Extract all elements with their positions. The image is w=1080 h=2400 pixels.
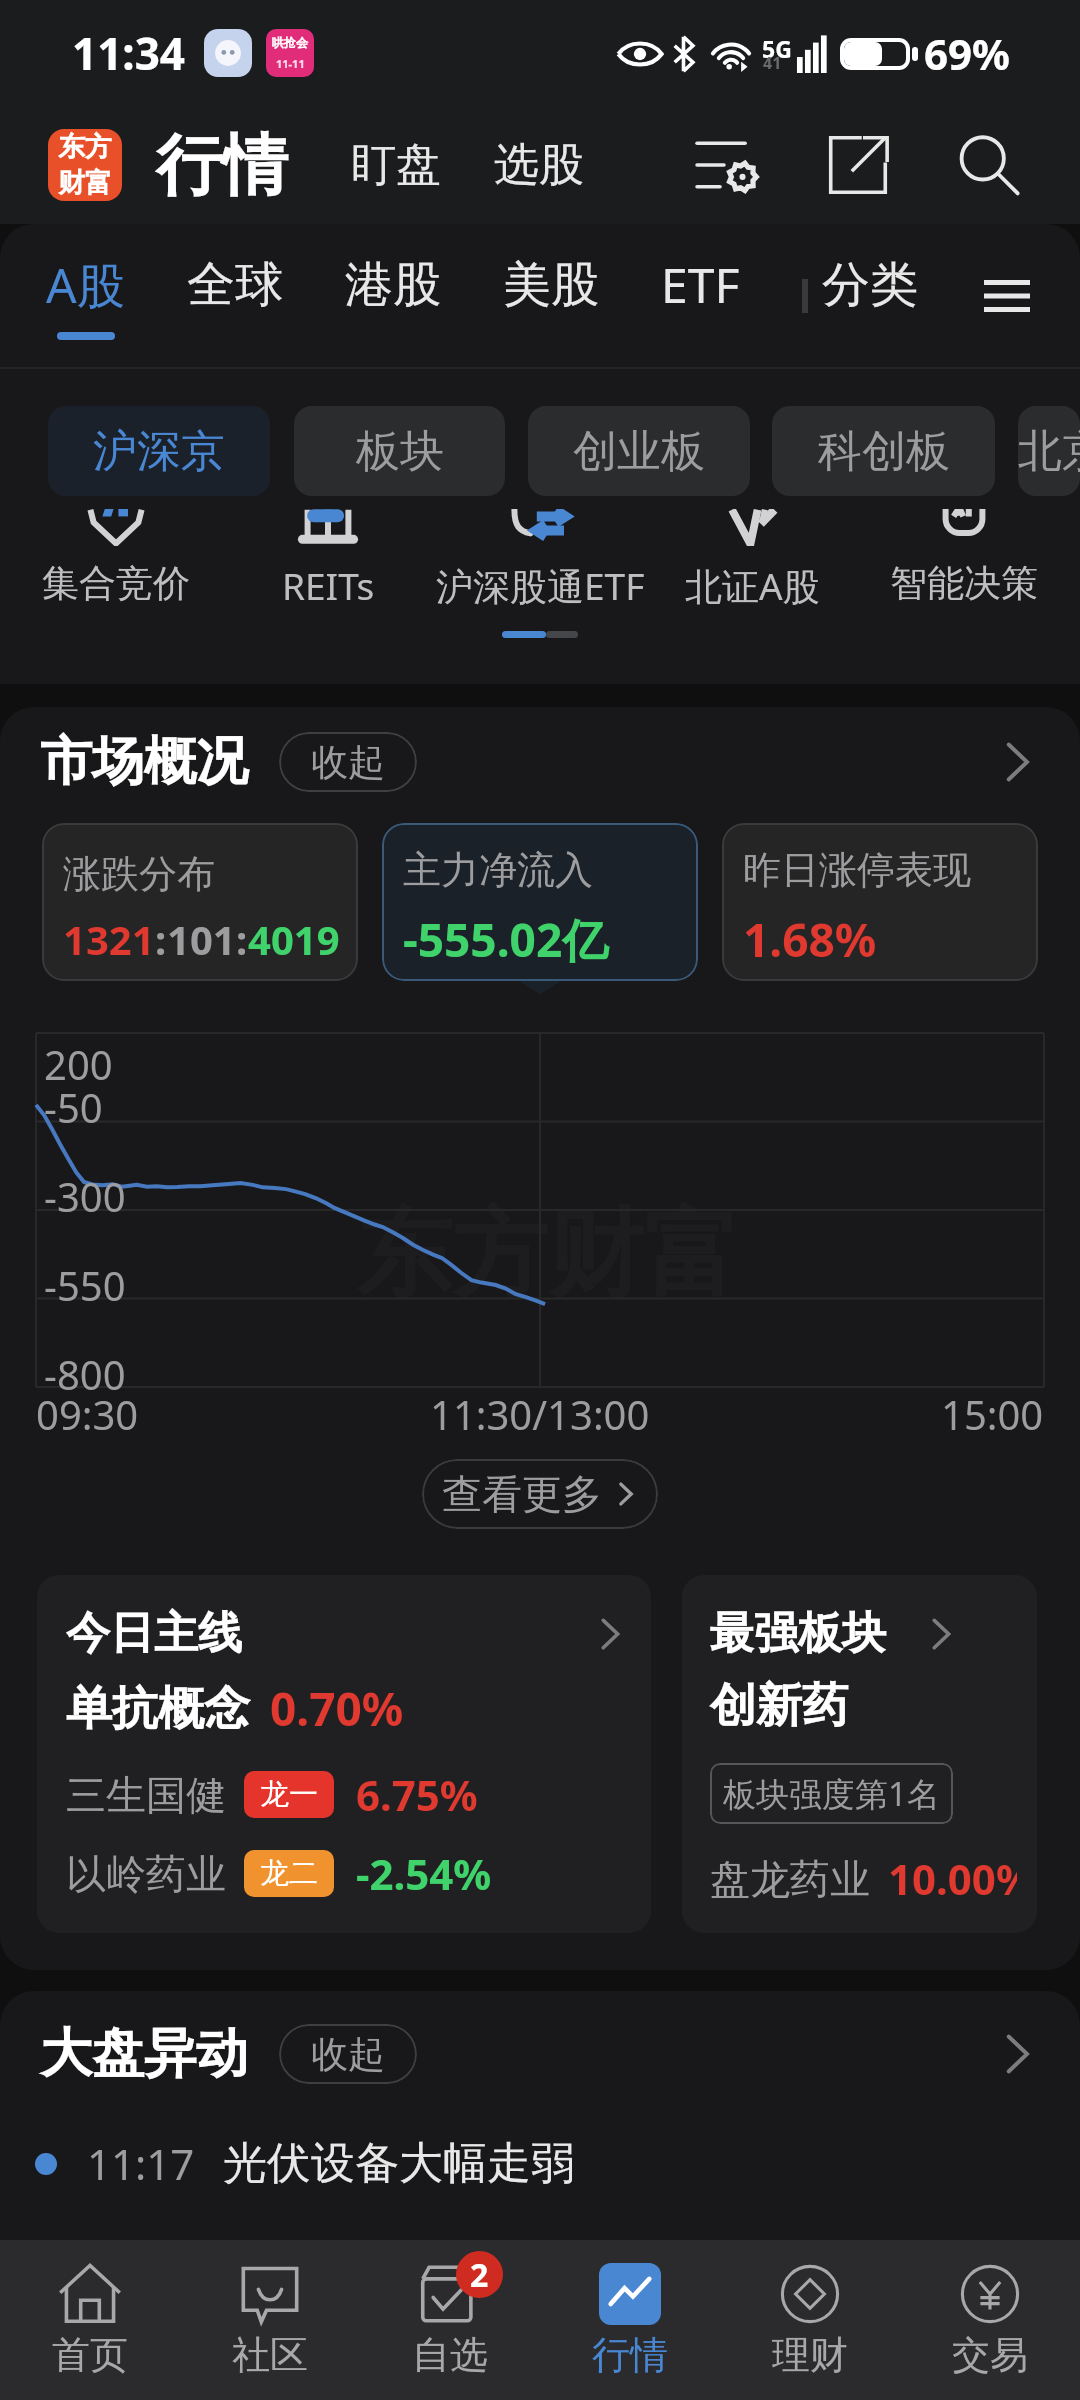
button[interactable]: 北京 (1018, 406, 1080, 496)
staticText: 科创板 (818, 424, 950, 479)
staticText: 东方财富 (356, 1195, 740, 1316)
staticText: 以岭药业 (66, 1849, 226, 1899)
staticText: 智能决策 (890, 560, 1038, 607)
staticText: -50 (44, 1080, 103, 1134)
staticText: 分类 (822, 255, 918, 315)
button[interactable]: 昨日涨停表现 (722, 823, 1038, 981)
button[interactable]: 理财 (720, 2240, 900, 2400)
staticText: 收起 (311, 739, 385, 786)
staticText: 盘龙药业 (710, 1854, 870, 1904)
button[interactable]: 2 (360, 2240, 540, 2400)
button[interactable]: 沪深股通ETF (434, 509, 646, 611)
staticText: 沪深股通ETF (436, 560, 645, 611)
button[interactable]: 盯盘 (351, 137, 441, 194)
staticText: 北证A股 (685, 560, 820, 611)
staticText: 社区 (232, 2331, 308, 2379)
staticText: : (236, 912, 248, 966)
staticText: 北京 (1018, 424, 1080, 479)
staticText: 1.68% (743, 908, 877, 971)
button[interactable]: 最强板块 (682, 1575, 1037, 1933)
button[interactable]: 社区 (180, 2240, 360, 2400)
staticText: 09:30 (36, 1387, 139, 1441)
staticText: 昨日涨停表现 (743, 846, 971, 894)
button[interactable]: 北证A股 (646, 509, 858, 611)
staticText: 15:00 (941, 1387, 1044, 1441)
staticText: 1321 (63, 912, 155, 966)
staticText: 2 (470, 2253, 489, 2297)
button[interactable]: 交易 (900, 2240, 1080, 2400)
button[interactable]: 全球 (187, 255, 283, 337)
staticText: 东方 (58, 130, 112, 164)
button[interactable]: Search (950, 127, 1026, 203)
button[interactable]: 收起 (279, 732, 417, 792)
staticText: 收起 (311, 2031, 385, 2078)
staticText: 行情 (592, 2331, 668, 2379)
staticText: 查看更多 (442, 1469, 602, 1519)
button[interactable]: 分类 (822, 255, 918, 337)
staticText: 市场概况 (40, 729, 248, 795)
button[interactable]: 涨跌分布 (42, 823, 358, 981)
staticText: 创业板 (573, 424, 705, 479)
button[interactable]: 板块 (294, 406, 505, 496)
staticText: 美股 (503, 255, 599, 315)
staticText: 最强板块 (710, 1606, 886, 1661)
staticText: 6.75% (356, 1766, 478, 1823)
button[interactable]: ETF (661, 252, 740, 339)
staticText: 理财 (772, 2331, 848, 2379)
staticText: 主力净流入 (403, 846, 593, 894)
staticText: 41 (763, 52, 782, 74)
staticText: ETF (661, 252, 740, 317)
staticText: 69% (924, 25, 1010, 82)
button[interactable]: 科创板 (772, 406, 995, 496)
staticText: 板块 (356, 424, 444, 479)
staticText: 沪深京 (93, 424, 225, 479)
staticText: -550 (44, 1258, 126, 1312)
button[interactable]: Share (820, 127, 896, 203)
button[interactable]: 今日主线 (37, 1575, 651, 1933)
button[interactable]: More (986, 2024, 1046, 2084)
button[interactable]: 智能决策 (858, 509, 1070, 607)
staticText: : (155, 912, 167, 966)
staticText: 大盘异动 (40, 2021, 248, 2087)
button[interactable]: REITs (222, 509, 434, 610)
staticText: 11:34 (72, 23, 186, 83)
button[interactable]: 查看更多 (422, 1459, 658, 1529)
staticText: 单抗概念 (66, 1680, 250, 1738)
staticText: 11:30/13:00 (430, 1387, 650, 1441)
staticText: 0.70% (270, 1677, 404, 1740)
staticText: 自选 (412, 2331, 488, 2379)
button[interactable]: 选股 (494, 137, 584, 194)
button[interactable]: More tabs (976, 265, 1038, 327)
staticText: 龙一 (260, 1776, 318, 1813)
button[interactable]: More (986, 732, 1046, 792)
staticText: 10.00% (888, 1850, 1017, 1907)
staticText: 11:17 (87, 2135, 195, 2192)
staticText: 交易 (952, 2331, 1028, 2379)
staticText: 哄抢会 (272, 35, 308, 50)
button[interactable]: A股 (46, 252, 125, 340)
staticText: -2.54% (356, 1845, 492, 1902)
button[interactable]: 港股 (345, 255, 441, 337)
staticText: -300 (44, 1169, 126, 1223)
staticText: 5G (762, 33, 792, 64)
staticText: 200 (44, 1037, 113, 1091)
button[interactable]: 创业板 (528, 406, 750, 496)
button[interactable]: Settings (690, 127, 766, 203)
staticText: 涨跌分布 (63, 850, 215, 898)
staticText: 创新药 (710, 1677, 848, 1735)
button[interactable]: 主力净流入 (382, 823, 698, 981)
button[interactable]: 沪深京 (48, 406, 270, 496)
staticText: 龙二 (260, 1855, 318, 1892)
button[interactable]: 集合竞价 (10, 509, 222, 607)
button[interactable]: 首页 (0, 2240, 180, 2400)
staticText: -800 (44, 1347, 126, 1401)
button[interactable]: 收起 (279, 2024, 417, 2084)
button[interactable]: 美股 (503, 255, 599, 337)
button[interactable]: 行情 (540, 2240, 720, 2400)
staticText: 今日主线 (66, 1606, 242, 1661)
button[interactable]: 11:17 (0, 2135, 1080, 2192)
staticText: 港股 (345, 255, 441, 315)
staticText: 101 (167, 912, 236, 966)
staticText: 集合竞价 (42, 560, 190, 607)
staticText: 光伏设备大幅走弱 (223, 2136, 575, 2191)
